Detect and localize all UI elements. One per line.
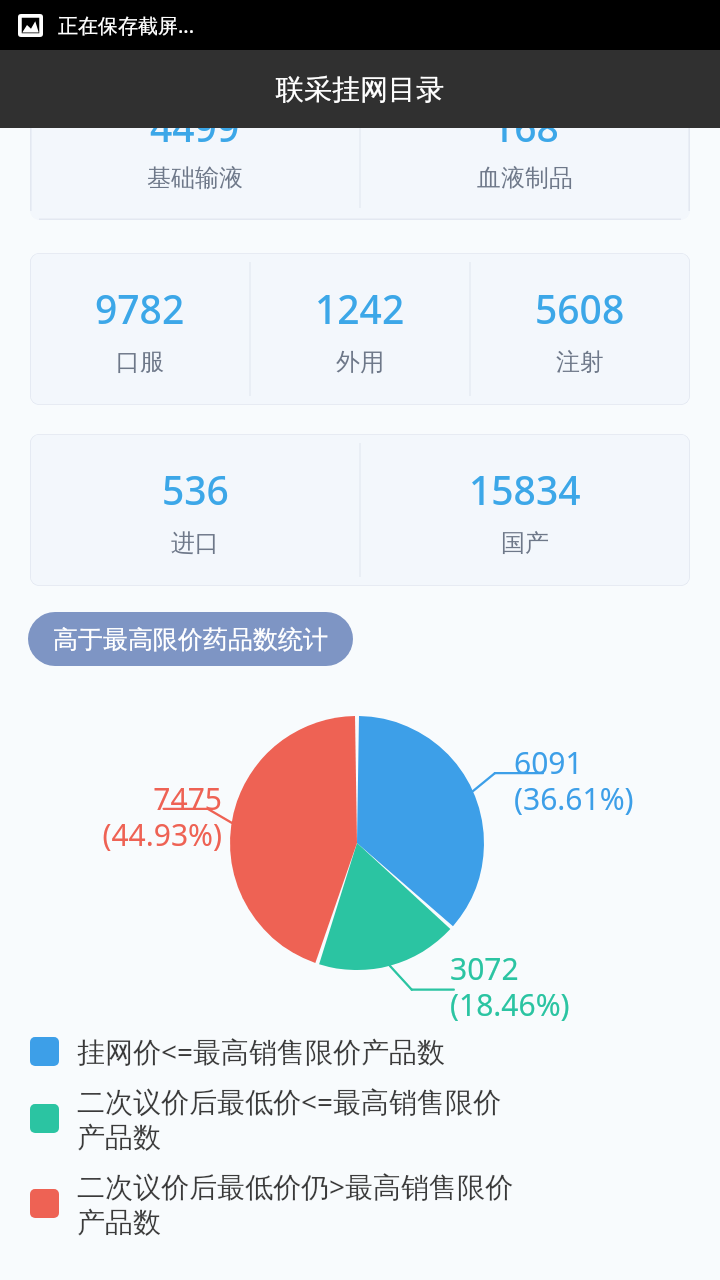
- staticText: 4499: [150, 128, 240, 153]
- button[interactable]: 536: [30, 434, 360, 586]
- button[interactable]: 挂网价<=最高销售限价产品数: [30, 1032, 710, 1070]
- staticText: 7475 (44.93%): [24, 778, 222, 855]
- button[interactable]: 168: [360, 128, 690, 220]
- staticText: 二次议价后最低价仍>最高销售限价 产品数: [77, 1167, 514, 1240]
- staticText: 基础输液: [147, 163, 243, 192]
- button[interactable]: 536: [30, 434, 690, 586]
- staticText: 高于最高限价药品数统计: [53, 624, 328, 655]
- staticText: 外用: [336, 347, 384, 377]
- staticText: 9782: [95, 282, 185, 335]
- staticText: 536: [162, 463, 229, 516]
- button[interactable]: 二次议价后最低价<=最高销售限价 产品数: [30, 1082, 710, 1155]
- staticText: 注射: [556, 347, 604, 377]
- button[interactable]: 高于最高限价药品数统计: [28, 612, 353, 666]
- staticText: 血液制品: [477, 163, 573, 192]
- staticText: 1242: [315, 282, 405, 335]
- staticText: 正在保存截屏...: [58, 12, 195, 39]
- button[interactable]: 4499: [30, 128, 360, 220]
- button[interactable]: 4499: [30, 128, 690, 220]
- staticText: 二次议价后最低价<=最高销售限价 产品数: [77, 1082, 502, 1155]
- staticText: 国产: [501, 528, 549, 558]
- staticText: 6091 (36.61%): [514, 742, 634, 819]
- button[interactable]: 1242: [250, 253, 470, 405]
- staticText: 3072 (18.46%): [450, 948, 570, 1025]
- other: Saving screenshot: [18, 13, 43, 38]
- button[interactable]: 5608: [470, 253, 690, 405]
- staticText: 5608: [535, 282, 625, 335]
- staticText: 联采挂网目录: [276, 72, 444, 107]
- staticText: 挂网价<=最高销售限价产品数: [77, 1032, 446, 1070]
- button[interactable]: 15834: [360, 434, 690, 586]
- staticText: 口服: [116, 347, 164, 377]
- button[interactable]: 9782: [30, 253, 250, 405]
- staticText: 进口: [171, 528, 219, 558]
- staticText: 168: [492, 128, 559, 153]
- button[interactable]: 二次议价后最低价仍>最高销售限价 产品数: [30, 1167, 710, 1240]
- button[interactable]: 9782: [30, 253, 690, 405]
- staticText: 15834: [469, 463, 581, 516]
